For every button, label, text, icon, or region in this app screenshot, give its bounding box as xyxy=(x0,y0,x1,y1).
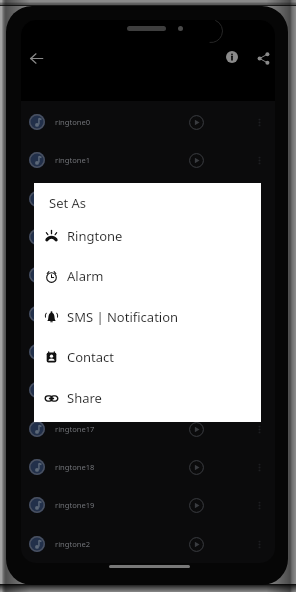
staticText: SMS | Notification xyxy=(67,308,179,326)
staticText: ringtone10 xyxy=(55,194,95,204)
button[interactable]: Play xyxy=(185,533,207,555)
staticText: Set As xyxy=(49,194,87,212)
staticText: Alarm xyxy=(67,267,104,285)
button[interactable]: ringtone13 xyxy=(21,295,275,333)
staticText: ringtone0 xyxy=(55,117,91,127)
staticText: ringtone12 xyxy=(55,270,95,280)
button[interactable]: ringtone15 xyxy=(21,371,275,409)
button[interactable]: ringtone0 xyxy=(21,103,275,141)
button[interactable]: Info xyxy=(218,43,246,71)
staticText: ringtone17 xyxy=(55,424,95,434)
staticText: ringtone13 xyxy=(55,309,95,319)
staticText: ringtone15 xyxy=(55,385,95,395)
button[interactable]: ringtone1 xyxy=(21,141,275,179)
button[interactable]: More options xyxy=(249,304,269,324)
staticText: Ringtone xyxy=(67,227,123,245)
staticText: ringtone18 xyxy=(55,462,95,472)
button[interactable]: ringtone18 xyxy=(21,448,275,486)
button[interactable]: SMS | Notification xyxy=(34,297,261,337)
button[interactable]: ringtone12 xyxy=(21,256,275,294)
button[interactable]: Play xyxy=(185,494,207,516)
button[interactable]: Share xyxy=(34,378,261,418)
staticText: ringtone19 xyxy=(55,500,95,510)
button[interactable]: ringtone11 xyxy=(21,218,275,256)
staticText: ringtone11 xyxy=(55,232,95,242)
button[interactable]: More options xyxy=(249,227,269,247)
button[interactable]: ringtone19 xyxy=(21,486,275,524)
staticText: ringtone1 xyxy=(55,155,91,165)
staticText: Share xyxy=(67,389,102,407)
button[interactable]: Share xyxy=(249,44,275,72)
button[interactable]: More options xyxy=(249,265,269,285)
button[interactable]: ringtone14 xyxy=(21,333,275,371)
button[interactable]: Play xyxy=(185,456,207,478)
button[interactable]: Play xyxy=(185,149,207,171)
button[interactable]: Back xyxy=(22,44,50,72)
button[interactable]: Alarm xyxy=(34,256,261,296)
staticText: ringtone2 xyxy=(55,539,91,549)
button[interactable]: Ringtone xyxy=(34,216,261,256)
button[interactable]: ringtone10 xyxy=(21,180,275,218)
button[interactable]: ringtone2 xyxy=(21,525,275,563)
button[interactable]: More options xyxy=(249,380,269,400)
button[interactable]: Contact xyxy=(34,337,261,377)
staticText: Contact xyxy=(67,348,115,366)
button[interactable]: More options xyxy=(249,189,269,209)
staticText: ringtone14 xyxy=(55,347,95,357)
button[interactable]: ringtone17 xyxy=(21,410,275,448)
button[interactable]: Play xyxy=(185,418,207,440)
button[interactable]: Play xyxy=(185,111,207,133)
button[interactable]: More options xyxy=(249,342,269,362)
button[interactable]: More options xyxy=(249,419,269,439)
